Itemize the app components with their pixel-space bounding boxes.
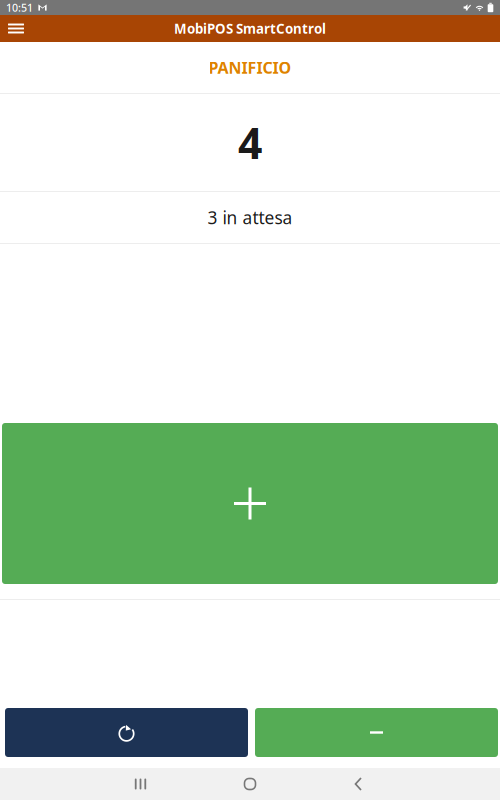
button[interactable]: Add ticket xyxy=(2,423,498,584)
button[interactable]: Recent apps xyxy=(85,768,195,800)
staticText: 3 in attesa xyxy=(207,206,292,229)
staticText: PANIFICIO xyxy=(208,57,291,78)
button[interactable]: Home xyxy=(195,768,304,800)
staticText: MobiPOS SmartControl xyxy=(174,20,326,37)
button[interactable]: Back xyxy=(304,768,414,800)
button[interactable]: Refresh xyxy=(5,708,248,757)
staticText: 10:51 xyxy=(6,0,33,15)
staticText: 4 xyxy=(238,114,262,171)
button[interactable]: Menu xyxy=(0,15,32,42)
button[interactable]: Remove ticket xyxy=(255,708,498,757)
